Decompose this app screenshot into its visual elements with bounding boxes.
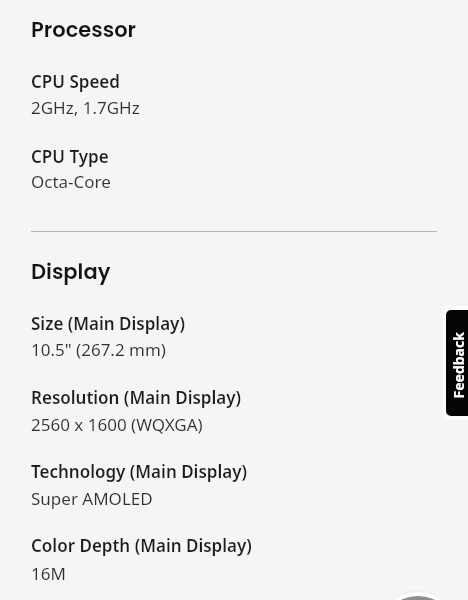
staticText: 2GHz, 1.7GHz [31,96,140,118]
button[interactable]: CPU Speed [31,70,437,118]
button[interactable]: Resolution (Main Display) [31,386,437,435]
staticText: 2560 x 1600 (WQXGA) [31,413,203,435]
staticText: 16M [31,562,66,584]
staticText: Technology (Main Display) [31,460,248,483]
staticText: CPU Type [31,145,109,168]
staticText: 10.5" (267.2 mm) [31,338,166,360]
button[interactable]: CPU Type [31,145,437,192]
button[interactable]: Scroll to top [378,588,458,600]
staticText: Octa-Core [31,170,111,192]
button[interactable]: Technology (Main Display) [31,460,437,509]
staticText: Color Depth (Main Display) [31,534,252,557]
staticText: Resolution (Main Display) [31,386,242,409]
button[interactable]: Color Depth (Main Display) [31,534,437,584]
staticText: Processor [31,15,137,44]
staticText: CPU Speed [31,70,120,93]
button[interactable]: Size (Main Display) [31,312,437,360]
staticText: Size (Main Display) [31,312,185,335]
staticText: Display [31,257,111,286]
staticText: Super AMOLED [31,487,153,509]
button[interactable]: Feedback [441,304,468,422]
